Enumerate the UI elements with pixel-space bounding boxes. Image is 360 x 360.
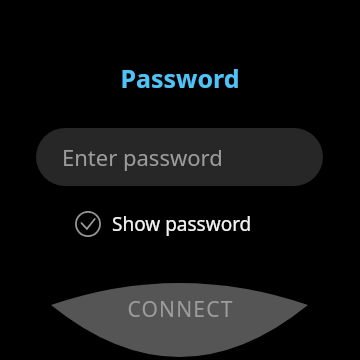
button[interactable]: Enter password [36, 128, 323, 186]
other: Show password checkbox [70, 206, 106, 242]
staticText: Enter password [62, 142, 223, 172]
staticText: Show password [112, 211, 252, 237]
button[interactable]: CONNECT [0, 275, 360, 360]
button[interactable]: Show password checkbox [70, 206, 296, 242]
staticText: CONNECT [127, 295, 234, 324]
staticText: Password [120, 61, 240, 95]
